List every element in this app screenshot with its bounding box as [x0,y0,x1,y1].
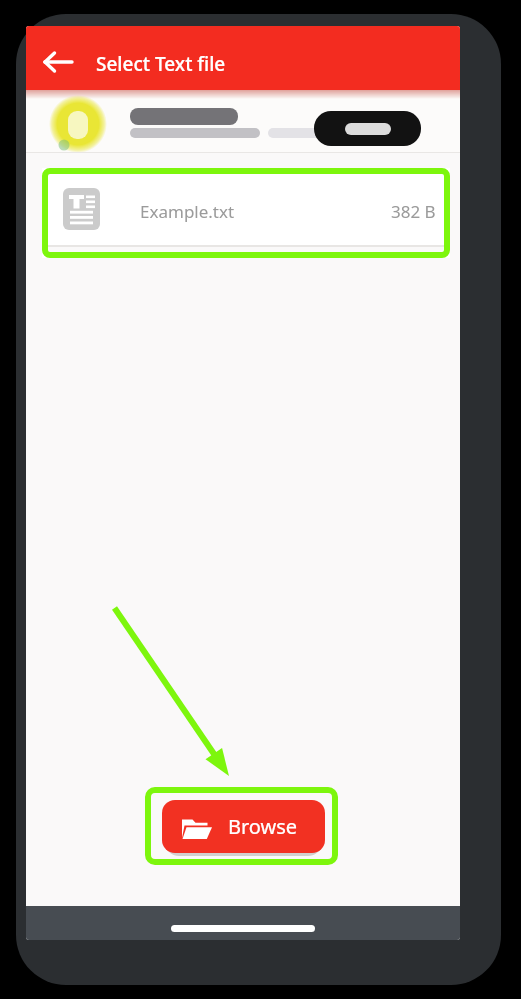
staticText: Select Text file [96,51,226,77]
staticText: Browse [228,813,298,840]
button[interactable] [171,925,315,932]
button[interactable]: Example.txt [42,168,450,258]
button[interactable] [314,111,421,146]
button[interactable]: Select Text file [26,26,460,90]
button[interactable] [26,90,460,153]
button[interactable]: Browse [162,800,325,853]
button[interactable] [45,53,73,71]
staticText: 382 B [391,200,436,223]
staticText: Example.txt [140,200,235,223]
